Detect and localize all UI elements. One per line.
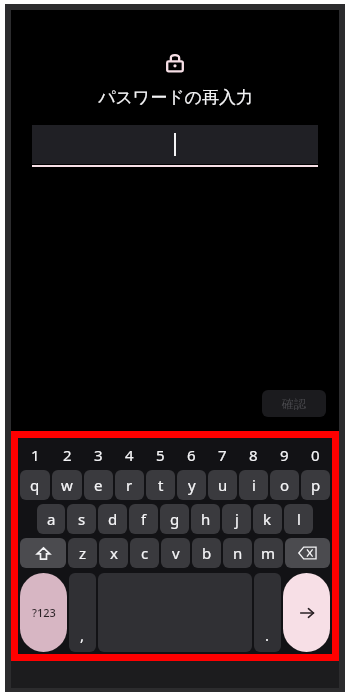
button[interactable]: s <box>67 504 96 534</box>
staticText: ?123 <box>32 605 56 620</box>
staticText: , <box>80 625 85 645</box>
button[interactable]: 3 <box>83 439 114 470</box>
staticText: q <box>30 475 40 495</box>
staticText: f <box>141 509 147 529</box>
staticText: 6 <box>187 445 196 465</box>
button[interactable]: h <box>191 504 220 534</box>
staticText: b <box>202 543 212 563</box>
button[interactable]: 0 <box>300 439 331 470</box>
button[interactable]: 9 <box>269 439 300 470</box>
button[interactable]: p <box>301 470 330 500</box>
button[interactable]: t <box>146 470 175 500</box>
button[interactable]: b <box>192 538 221 568</box>
staticText: m <box>261 543 276 563</box>
button[interactable]: 1 <box>19 439 51 470</box>
button[interactable]: Enter <box>283 573 330 652</box>
button[interactable]: z <box>68 538 97 568</box>
staticText: x <box>110 543 118 563</box>
button[interactable]: Shift <box>20 538 66 568</box>
button[interactable]: 6 <box>176 439 207 470</box>
staticText: i <box>252 475 256 495</box>
button[interactable]: x <box>99 538 128 568</box>
button[interactable]: 2 <box>51 439 83 470</box>
button[interactable]: m <box>254 538 283 568</box>
staticText: 1 <box>31 445 40 465</box>
staticText: k <box>263 509 272 529</box>
staticText: u <box>218 475 228 495</box>
staticText: w <box>61 475 73 495</box>
button[interactable]: 8 <box>238 439 269 470</box>
staticText: 8 <box>249 445 258 465</box>
button[interactable]: v <box>161 538 190 568</box>
staticText: 4 <box>125 445 134 465</box>
button[interactable]: g <box>160 504 189 534</box>
staticText: v <box>172 543 180 563</box>
button[interactable]: 5 <box>145 439 176 470</box>
button[interactable]: ?123 <box>20 573 67 652</box>
staticText: 9 <box>280 445 289 465</box>
staticText: z <box>79 543 87 563</box>
button[interactable]: u <box>208 470 237 500</box>
staticText: n <box>233 543 243 563</box>
button[interactable]: n <box>223 538 252 568</box>
staticText: y <box>188 475 196 495</box>
other: Lock <box>162 50 188 76</box>
staticText: o <box>280 475 290 495</box>
staticText: 2 <box>63 445 72 465</box>
staticText: h <box>201 509 211 529</box>
button[interactable]: o <box>270 470 299 500</box>
button[interactable] <box>32 125 318 167</box>
button[interactable]: f <box>129 504 158 534</box>
staticText: e <box>94 475 103 495</box>
button[interactable]: , <box>69 573 96 652</box>
staticText: t <box>158 475 164 495</box>
staticText: 0 <box>311 445 320 465</box>
staticText: c <box>141 543 149 563</box>
button[interactable]: a <box>37 504 65 534</box>
button[interactable]: l <box>284 504 313 534</box>
staticText: a <box>47 509 56 529</box>
button[interactable]: c <box>130 538 159 568</box>
staticText: 確認 <box>282 396 306 411</box>
staticText: r <box>126 475 133 495</box>
button[interactable]: r <box>115 470 144 500</box>
button[interactable]: d <box>98 504 127 534</box>
button[interactable]: . <box>254 573 281 652</box>
staticText: s <box>78 509 86 529</box>
staticText: p <box>311 475 321 495</box>
button[interactable]: j <box>222 504 251 534</box>
staticText: l <box>297 509 301 529</box>
staticText: d <box>108 509 118 529</box>
button[interactable]: 4 <box>114 439 145 470</box>
button[interactable]: 7 <box>207 439 238 470</box>
staticText: 7 <box>218 445 227 465</box>
button[interactable]: Backspace <box>285 538 330 568</box>
button[interactable]: e <box>84 470 113 500</box>
staticText: g <box>170 509 180 529</box>
button[interactable]: 確認 <box>262 390 326 417</box>
staticText: j <box>235 509 239 529</box>
staticText: . <box>265 625 270 645</box>
button[interactable]: q <box>20 470 50 500</box>
staticText: 5 <box>156 445 165 465</box>
button[interactable]: y <box>177 470 206 500</box>
button[interactable]: i <box>239 470 268 500</box>
button[interactable]: w <box>52 470 82 500</box>
staticText: パスワードの再入力 <box>98 87 253 108</box>
button[interactable]: k <box>253 504 282 534</box>
staticText: 3 <box>94 445 103 465</box>
